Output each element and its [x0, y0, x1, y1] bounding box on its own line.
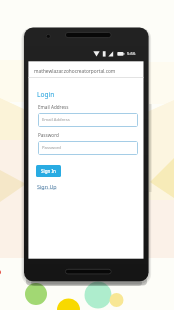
staticText: mathewlazar.zohocreatorportal.com: [34, 68, 116, 75]
staticText: Sign In: [41, 168, 56, 174]
staticText: Login: [37, 90, 55, 99]
staticText: Password: [38, 132, 59, 138]
staticText: Sign Up: [37, 183, 57, 190]
button[interactable]: Password: [38, 141, 138, 155]
staticText: Email Address: [42, 117, 70, 123]
staticText: Password: [42, 145, 61, 151]
button[interactable]: Sign In: [36, 165, 61, 177]
staticText: Email Address: [38, 104, 69, 110]
staticText: 5:56: [127, 51, 136, 57]
button[interactable]: Sign Up: [37, 183, 57, 190]
button[interactable]: Email Address: [38, 113, 138, 127]
